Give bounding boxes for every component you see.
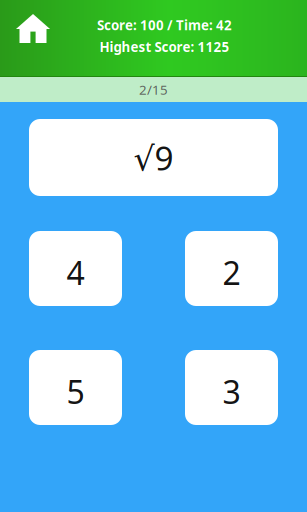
button[interactable]: 3 xyxy=(185,350,278,425)
button[interactable]: 2 xyxy=(185,231,278,306)
button[interactable]: Home xyxy=(0,0,62,53)
button[interactable]: 4 xyxy=(29,231,122,306)
staticText: √9 xyxy=(133,135,173,180)
button[interactable]: 5 xyxy=(29,350,122,425)
staticText: Highest Score: 1125 xyxy=(99,38,229,56)
staticText: 4 xyxy=(66,251,84,294)
staticText: 2 xyxy=(222,251,240,294)
staticText: 5 xyxy=(66,370,84,413)
staticText: 3 xyxy=(222,370,240,413)
staticText: 2/15 xyxy=(139,81,168,98)
staticText: Score: 100 / Time: 42 xyxy=(97,16,232,34)
